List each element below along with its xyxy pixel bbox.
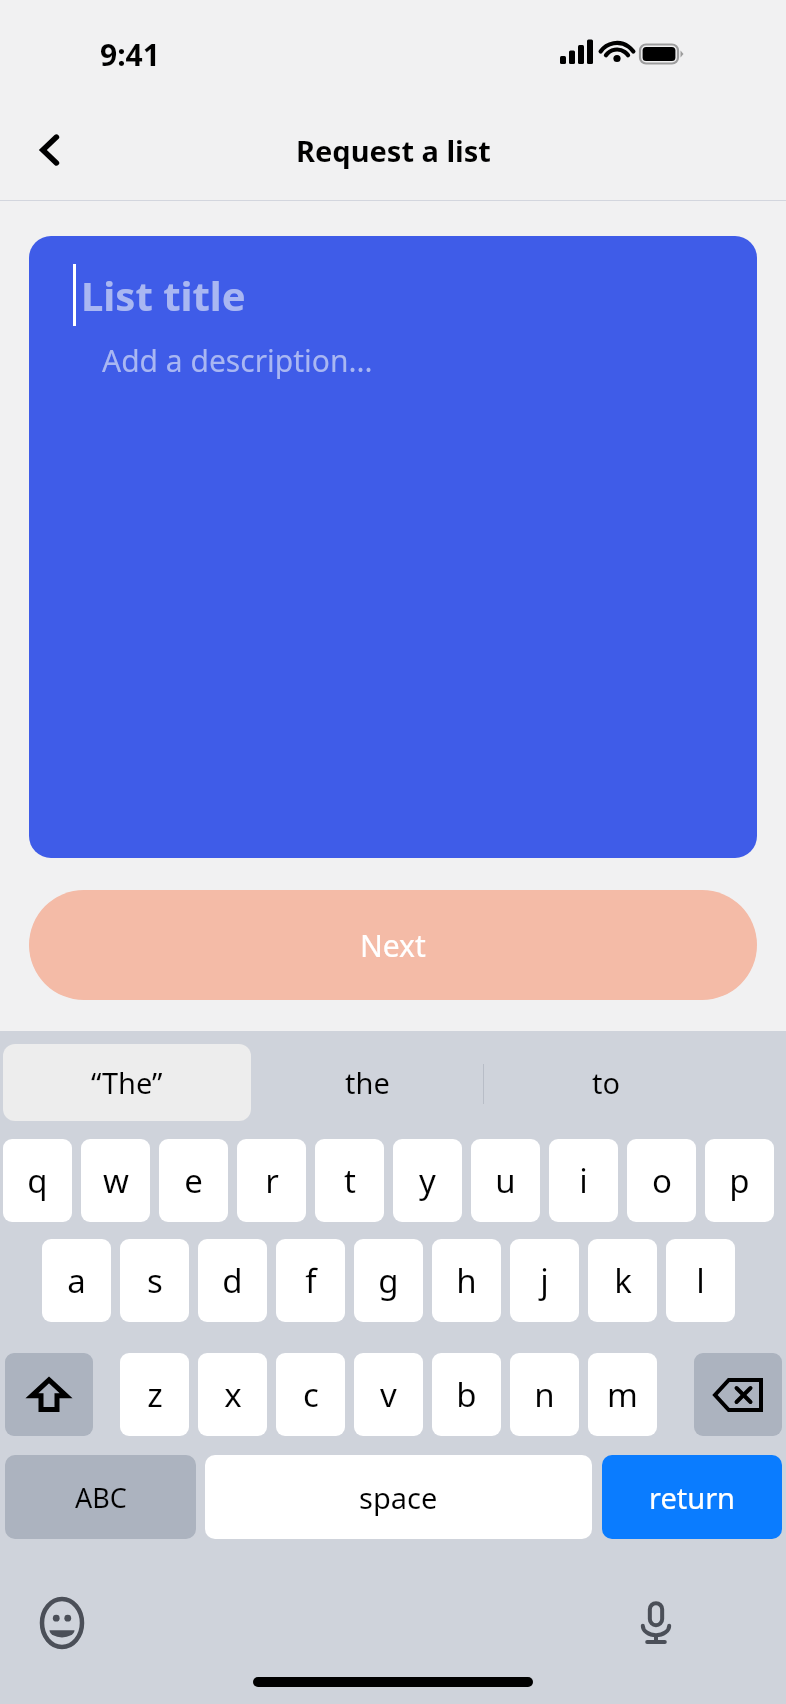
staticText: o — [652, 1158, 672, 1203]
staticText: k — [614, 1258, 632, 1303]
button[interactable]: i — [549, 1139, 618, 1222]
button[interactable]: the — [251, 1044, 483, 1121]
staticText: Add a description... — [102, 340, 373, 381]
staticText: b — [456, 1372, 477, 1417]
button[interactable]: u — [471, 1139, 540, 1222]
button[interactable]: c — [276, 1353, 345, 1436]
staticText: f — [305, 1258, 317, 1303]
staticText: List title — [81, 268, 246, 322]
staticText: to — [592, 1063, 621, 1102]
button[interactable]: k — [588, 1239, 657, 1322]
staticText: u — [495, 1158, 516, 1203]
staticText: a — [67, 1258, 86, 1303]
staticText: i — [579, 1158, 588, 1203]
button[interactable]: f — [276, 1239, 345, 1322]
button[interactable]: “The” — [3, 1044, 251, 1121]
button[interactable]: h — [432, 1239, 501, 1322]
button[interactable]: y — [393, 1139, 462, 1222]
button[interactable]: Back — [20, 119, 82, 181]
button[interactable]: Backspace — [694, 1353, 782, 1436]
staticText: Next — [360, 925, 426, 966]
staticText: e — [184, 1158, 203, 1203]
staticText: w — [103, 1158, 129, 1203]
button[interactable]: ABC — [5, 1455, 196, 1539]
staticText: the — [345, 1063, 390, 1102]
button[interactable]: d — [198, 1239, 267, 1322]
button[interactable]: m — [588, 1353, 657, 1436]
button[interactable]: z — [120, 1353, 189, 1436]
staticText: h — [456, 1258, 477, 1303]
button[interactable]: r — [237, 1139, 306, 1222]
button[interactable]: Next — [29, 890, 757, 1000]
button[interactable]: g — [354, 1239, 423, 1322]
button[interactable]: o — [627, 1139, 696, 1222]
staticText: Request a list — [296, 131, 491, 170]
staticText: ABC — [75, 1479, 127, 1516]
staticText: p — [729, 1158, 750, 1203]
button[interactable]: to — [484, 1044, 728, 1121]
staticText: q — [27, 1158, 48, 1203]
staticText: z — [147, 1372, 163, 1417]
staticText: x — [224, 1372, 242, 1417]
button[interactable]: q — [3, 1139, 72, 1222]
staticText: 9:41 — [100, 34, 160, 75]
staticText: t — [344, 1158, 356, 1203]
button[interactable]: a — [42, 1239, 111, 1322]
button[interactable]: e — [159, 1139, 228, 1222]
button[interactable]: return — [602, 1455, 782, 1539]
button[interactable]: space — [205, 1455, 592, 1539]
staticText: n — [534, 1372, 555, 1417]
staticText: g — [378, 1258, 399, 1303]
staticText: s — [147, 1258, 163, 1303]
staticText: r — [265, 1158, 279, 1203]
staticText: v — [380, 1372, 397, 1417]
button[interactable]: p — [705, 1139, 774, 1222]
button[interactable]: l — [666, 1239, 735, 1322]
button[interactable]: List title — [29, 236, 757, 858]
button[interactable]: x — [198, 1353, 267, 1436]
staticText: c — [303, 1372, 319, 1417]
staticText: space — [359, 1478, 438, 1517]
staticText: d — [222, 1258, 243, 1303]
button[interactable]: Shift — [5, 1353, 93, 1436]
staticText: l — [696, 1258, 705, 1303]
button[interactable]: t — [315, 1139, 384, 1222]
button[interactable]: b — [432, 1353, 501, 1436]
button[interactable]: n — [510, 1353, 579, 1436]
staticText: j — [540, 1258, 549, 1303]
staticText: m — [607, 1372, 638, 1417]
staticText: “The” — [91, 1063, 163, 1102]
staticText: return — [649, 1478, 736, 1517]
button[interactable]: Emoji — [28, 1589, 96, 1657]
button[interactable]: Voice input — [622, 1589, 690, 1657]
button[interactable]: w — [81, 1139, 150, 1222]
button[interactable]: j — [510, 1239, 579, 1322]
button[interactable]: s — [120, 1239, 189, 1322]
button[interactable]: v — [354, 1353, 423, 1436]
staticText: y — [419, 1158, 436, 1203]
